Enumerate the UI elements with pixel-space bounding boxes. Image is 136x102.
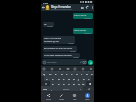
button[interactable]: Sure I am at [73,13,93,19]
staticText: With 4 PM board possible @ 5th [44,37,62,43]
staticText: F [63,77,65,80]
button[interactable]: Shift [41,81,50,86]
button[interactable]: N [76,81,81,86]
button[interactable]: More options [90,4,94,11]
staticText: N [78,82,80,85]
button[interactable]: A [44,76,50,81]
button[interactable]: Voice message [88,60,93,65]
staticText: Profile [46,98,51,100]
button[interactable]: Be straight on line 7th floor [43,46,77,52]
staticText: Be straight on line 7th floor [44,47,73,50]
staticText: 6 [73,71,74,73]
staticText: . [80,87,81,90]
staticText: 0 [93,71,94,73]
staticText: G [68,77,70,80]
staticText: U [76,72,78,75]
staticText: Have you at [74,29,87,32]
button[interactable]: J [76,76,81,81]
button[interactable]: 7 [74,71,79,76]
button[interactable]: Back [41,4,45,11]
staticText: Share [85,98,90,100]
staticText: V [68,82,70,85]
button[interactable]: 5 [64,71,69,76]
staticText: ok [44,23,47,26]
button[interactable]: Video call [80,4,85,11]
button[interactable]: Share [81,93,94,102]
staticText: I [81,72,82,75]
button[interactable]: 8 [79,71,84,76]
button[interactable]: S [50,76,56,81]
other: Attach [80,61,82,63]
button[interactable]: X [56,81,61,86]
staticText: 1:27 [43,1,48,4]
button[interactable]: 9 [84,71,89,76]
button[interactable]: Have you at [73,28,93,34]
staticText: Sent [73,98,77,100]
button[interactable]: 0 [89,71,94,76]
button[interactable]: Search [81,67,85,71]
button[interactable]: With 4 PM board possible @ 5th [43,36,75,44]
staticText: 5 [68,71,69,73]
button[interactable]: D [56,76,61,81]
button[interactable]: F [61,76,66,81]
button[interactable]: Z [50,81,56,86]
button[interactable]: Message [42,59,87,65]
staticText: 7 [78,71,79,73]
button[interactable]: Space [54,86,78,91]
staticText: 8 [83,71,84,73]
button[interactable]: , [49,86,54,91]
button[interactable]: G [66,76,71,81]
staticText: 9 [88,71,89,73]
button[interactable]: n' fill after passing through the last r… [43,53,80,58]
staticText: Maya Fernandez [51,5,71,8]
staticText: 1:27 pm [84,32,90,34]
staticText: R [61,72,63,75]
staticText: Z [52,82,54,85]
staticText: 4 [63,71,64,73]
button[interactable]: L [86,76,91,81]
button[interactable]: Settings [73,67,77,71]
button[interactable]: 4 [59,71,64,76]
staticText: A [46,77,48,80]
staticText: M [82,82,85,85]
button[interactable]: K [81,76,86,81]
staticText: 1:27 pm [84,17,90,19]
button[interactable]: Profile [41,93,55,102]
button[interactable]: Enter [83,86,94,91]
button[interactable]: . [78,86,83,91]
button[interactable]: Mic [89,67,93,71]
button[interactable]: Emoji [42,67,46,71]
button[interactable]: 1 [41,71,47,76]
button[interactable]: B [71,81,76,86]
staticText: 1:27 pm [73,56,79,58]
other: Camera [83,61,86,64]
button[interactable]: M [81,81,86,86]
staticText: n' fill after passing through the last r… [44,54,72,58]
button[interactable]: Clipboard [66,67,70,71]
button[interactable]: GIF [50,67,54,71]
button[interactable]: 2 [47,71,53,76]
button[interactable]: 6 [69,71,74,76]
button[interactable]: V [66,81,71,86]
staticText: S [52,77,54,80]
button[interactable]: Backspace [86,81,94,86]
button[interactable]: ?123 [41,86,49,91]
staticText: Modify [59,98,65,100]
staticText: 1:27 pm [47,25,53,27]
staticText: C [63,82,65,85]
button[interactable]: Sent [68,93,81,102]
button[interactable]: C [61,81,66,86]
staticText: J [78,77,79,80]
staticText: 1:27 pm [68,42,74,44]
button[interactable]: Sticker [58,67,62,71]
button[interactable]: Call [85,4,90,11]
button[interactable]: 3 [53,71,59,76]
staticText: T [66,72,68,75]
staticText: Q [43,72,45,75]
button[interactable]: H [71,76,76,81]
button[interactable]: ok [43,22,54,27]
staticText: tap here for contact info [51,8,72,10]
button[interactable]: Modify [55,93,68,102]
staticText: P [91,72,93,75]
